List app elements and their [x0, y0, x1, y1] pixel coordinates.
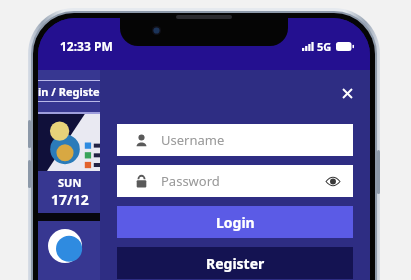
staticText: Username — [161, 131, 225, 149]
button[interactable]: Close — [332, 78, 362, 108]
button[interactable]: Password — [117, 165, 353, 197]
button[interactable]: Show password — [320, 168, 346, 194]
button[interactable]: Register — [117, 247, 353, 279]
staticText: Password — [161, 172, 220, 190]
staticText: 12:33 PM — [60, 38, 113, 54]
button[interactable]: Login — [117, 206, 353, 238]
staticText: Login — [216, 213, 255, 232]
staticText: Register — [206, 254, 265, 273]
button[interactable]: Username — [117, 124, 353, 156]
button[interactable]: Next day — [104, 171, 128, 213]
staticText: 5G — [317, 39, 332, 54]
button[interactable]: SUN — [38, 171, 128, 213]
staticText: 17/12 — [51, 190, 89, 209]
button[interactable] — [38, 114, 128, 171]
button[interactable] — [38, 221, 128, 280]
staticText: SUN — [58, 175, 82, 190]
button[interactable]: Login / Register — [38, 80, 106, 102]
staticText: Login / Register — [38, 84, 105, 99]
